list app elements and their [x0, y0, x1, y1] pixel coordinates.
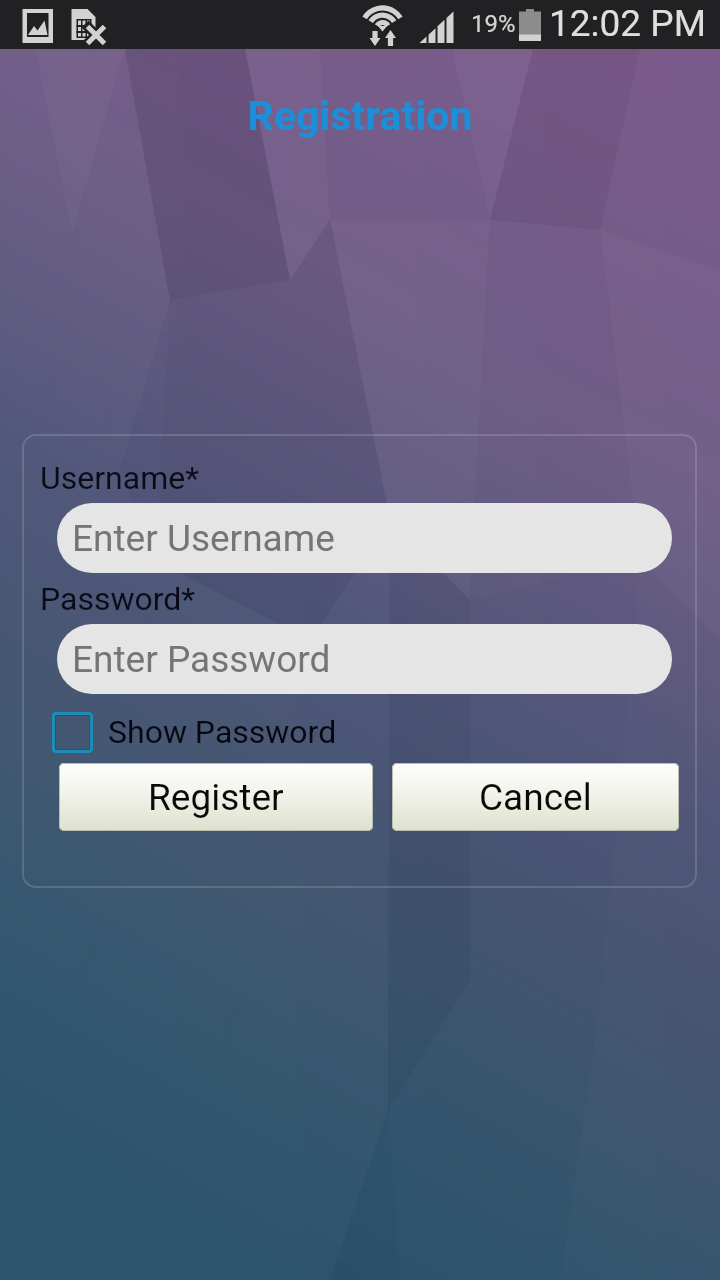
button[interactable]: Register — [59, 763, 373, 831]
staticText: 12:02 PM — [549, 2, 706, 45]
staticText: 19% — [471, 10, 516, 38]
staticText: Enter Password — [72, 638, 331, 681]
button[interactable]: Cancel — [392, 763, 679, 831]
button[interactable]: Enter Password — [57, 624, 672, 694]
staticText: Cancel — [479, 776, 592, 819]
button[interactable]: Enter Username — [57, 503, 672, 573]
staticText: Registration — [0, 92, 720, 140]
staticText: Register — [148, 776, 284, 819]
staticText: Enter Username — [72, 517, 335, 560]
staticText: Show Password — [108, 713, 337, 751]
button[interactable]: Show Password — [52, 709, 337, 755]
staticText: Password* — [40, 580, 196, 618]
staticText: Username* — [40, 459, 199, 497]
